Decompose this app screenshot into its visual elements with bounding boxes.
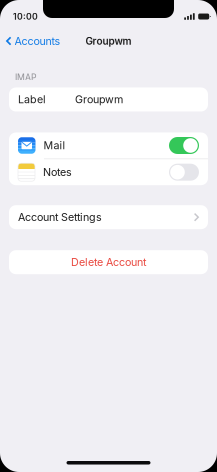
staticText: Groupwm	[75, 93, 123, 106]
staticText: Accounts	[14, 34, 60, 47]
staticText: Notes	[43, 166, 72, 179]
staticText: Label	[18, 93, 46, 106]
button[interactable]: Accounts	[0, 30, 68, 51]
staticText: Groupwm	[85, 35, 131, 47]
staticText: Account Settings	[18, 211, 102, 224]
button[interactable]: Mail	[9, 132, 208, 158]
button[interactable]: Notes	[9, 159, 208, 185]
button[interactable]: Account Settings	[9, 205, 208, 229]
button[interactable]: Delete Account	[9, 250, 208, 274]
staticText: Mail	[43, 139, 65, 152]
staticText: IMAP	[15, 72, 37, 82]
staticText: Delete Account	[71, 256, 146, 269]
staticText: 10:00	[13, 11, 38, 22]
